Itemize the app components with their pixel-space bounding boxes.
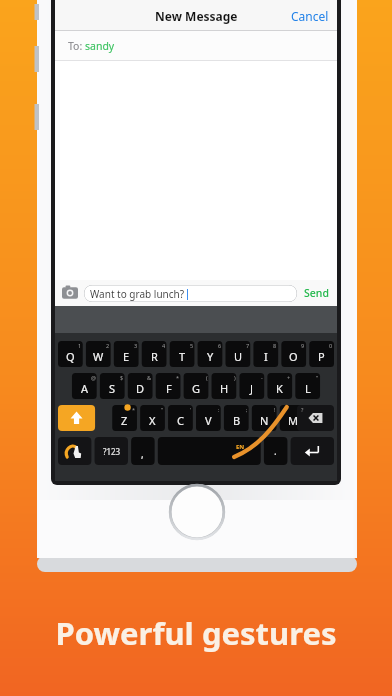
button[interactable]: N: [252, 405, 277, 431]
staticText: 2: [106, 342, 110, 349]
button[interactable]: B: [224, 405, 249, 431]
staticText: D: [136, 381, 145, 396]
button[interactable]: Gesture typing: [58, 437, 91, 465]
staticText: B: [233, 413, 241, 428]
button[interactable]: V: [196, 405, 221, 431]
staticText: G: [192, 381, 201, 396]
button[interactable]: R: [142, 341, 167, 367]
staticText: Want to grab lunch?: [90, 287, 185, 301]
button[interactable]: Enter: [291, 437, 334, 465]
staticText: Send: [304, 286, 329, 300]
staticText: Y: [207, 349, 214, 364]
staticText: 8: [273, 342, 277, 349]
staticText: 3: [134, 342, 138, 349]
staticText: Z: [121, 413, 128, 428]
button[interactable]: C: [168, 405, 193, 431]
button[interactable]: Y: [198, 341, 223, 367]
button[interactable]: G: [184, 373, 209, 399]
staticText: W: [93, 349, 104, 364]
button[interactable]: Want to grab lunch?: [84, 285, 297, 302]
staticText: Cancel: [291, 8, 329, 24]
staticText: ,: [141, 447, 144, 461]
button[interactable]: A: [72, 373, 97, 399]
button[interactable]: Shift: [58, 405, 95, 431]
staticText: E: [123, 349, 130, 364]
staticText: ;: [246, 406, 248, 413]
staticText: O: [289, 349, 298, 364]
staticText: 9: [301, 342, 305, 349]
staticText: :: [218, 406, 220, 413]
button[interactable]: Space: [158, 437, 261, 465]
button[interactable]: H: [212, 373, 237, 399]
staticText: 5: [190, 342, 194, 349]
staticText: 6: [218, 342, 222, 349]
staticText: ?: [301, 406, 304, 413]
staticText: ': [190, 406, 192, 413]
staticText: $: [120, 374, 124, 381]
staticText: ): [234, 374, 236, 381]
staticText: &: [147, 374, 152, 381]
button[interactable]: Cancel: [283, 2, 337, 30]
staticText: T: [179, 349, 186, 364]
button[interactable]: Period: [264, 437, 287, 465]
button[interactable]: P: [309, 341, 334, 367]
staticText: ": [161, 406, 164, 413]
staticText: +: [287, 374, 291, 381]
staticText: V: [205, 413, 212, 428]
staticText: X: [149, 413, 156, 428]
staticText: 7: [246, 342, 250, 349]
staticText: F: [166, 381, 172, 396]
staticText: L: [305, 381, 311, 396]
staticText: To:: [68, 39, 85, 53]
button[interactable]: W: [86, 341, 111, 367]
staticText: *: [132, 406, 136, 413]
staticText: sandy: [85, 39, 115, 53]
staticText: C: [177, 413, 184, 428]
button[interactable]: F: [156, 373, 181, 399]
staticText: J: [250, 381, 254, 396]
button[interactable]: Q: [58, 341, 83, 367]
staticText: P: [318, 349, 325, 364]
staticText: 4: [162, 342, 166, 349]
button[interactable]: To:: [55, 31, 337, 61]
staticText: ?123: [103, 446, 121, 457]
staticText: N: [260, 413, 269, 428]
staticText: ": [316, 374, 319, 381]
staticText: R: [151, 349, 158, 364]
staticText: K: [276, 381, 283, 396]
button[interactable]: Send: [301, 282, 332, 304]
button[interactable]: Comma: [131, 437, 154, 465]
staticText: -: [261, 374, 263, 381]
staticText: @: [91, 374, 96, 381]
button[interactable]: ?123: [95, 437, 128, 465]
button[interactable]: D: [128, 373, 153, 399]
button[interactable]: K: [267, 373, 292, 399]
button[interactable]: M: [280, 405, 305, 431]
staticText: Q: [66, 349, 75, 364]
button[interactable]: Backspace: [297, 405, 334, 431]
button[interactable]: Z: [112, 405, 137, 431]
staticText: *: [176, 374, 180, 381]
button[interactable]: X: [140, 405, 165, 431]
staticText: New Message: [155, 8, 238, 24]
staticText: (: [206, 374, 208, 381]
staticText: !: [274, 406, 276, 413]
button[interactable]: T: [170, 341, 195, 367]
staticText: EN: [236, 443, 245, 451]
button[interactable]: U: [226, 341, 251, 367]
button[interactable]: Take photo: [60, 283, 80, 303]
staticText: 0: [329, 342, 333, 349]
button[interactable]: L: [295, 373, 320, 399]
button[interactable]: I: [253, 341, 278, 367]
staticText: 1: [78, 342, 82, 349]
button[interactable]: O: [281, 341, 306, 367]
staticText: U: [234, 349, 243, 364]
button[interactable]: E: [114, 341, 139, 367]
button[interactable]: J: [239, 373, 264, 399]
staticText: M: [288, 413, 298, 428]
staticText: H: [220, 381, 229, 396]
staticText: Powerful gestures: [0, 612, 392, 654]
button[interactable]: S: [100, 373, 125, 399]
staticText: I: [264, 349, 268, 364]
staticText: .: [274, 444, 277, 458]
